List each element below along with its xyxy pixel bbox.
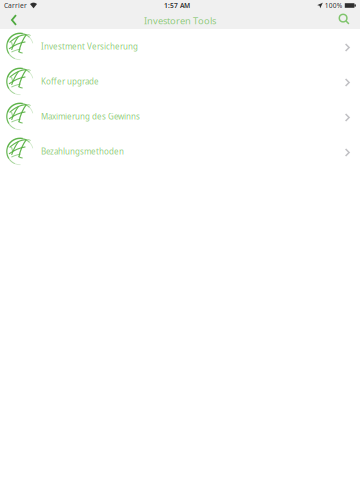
staticText: Maximierung des Gewinns [41, 111, 140, 122]
button[interactable]: Search [333, 11, 357, 29]
staticText: Investoren Tools [144, 15, 216, 27]
staticText: Koffer upgrade [41, 76, 99, 87]
button[interactable]: Koffer upgrade [0, 64, 360, 99]
button[interactable]: Back [3, 11, 25, 29]
button[interactable]: Investment Versicherung [0, 29, 360, 64]
button[interactable]: Maximierung des Gewinns [0, 99, 360, 134]
staticText: Carrier [4, 1, 27, 10]
staticText: Bezahlungsmethoden [41, 146, 124, 157]
staticText: 1:57 AM [164, 1, 190, 10]
staticText: 100% [325, 1, 343, 10]
staticText: Investment Versicherung [41, 41, 138, 52]
button[interactable]: Bezahlungsmethoden [0, 134, 360, 169]
